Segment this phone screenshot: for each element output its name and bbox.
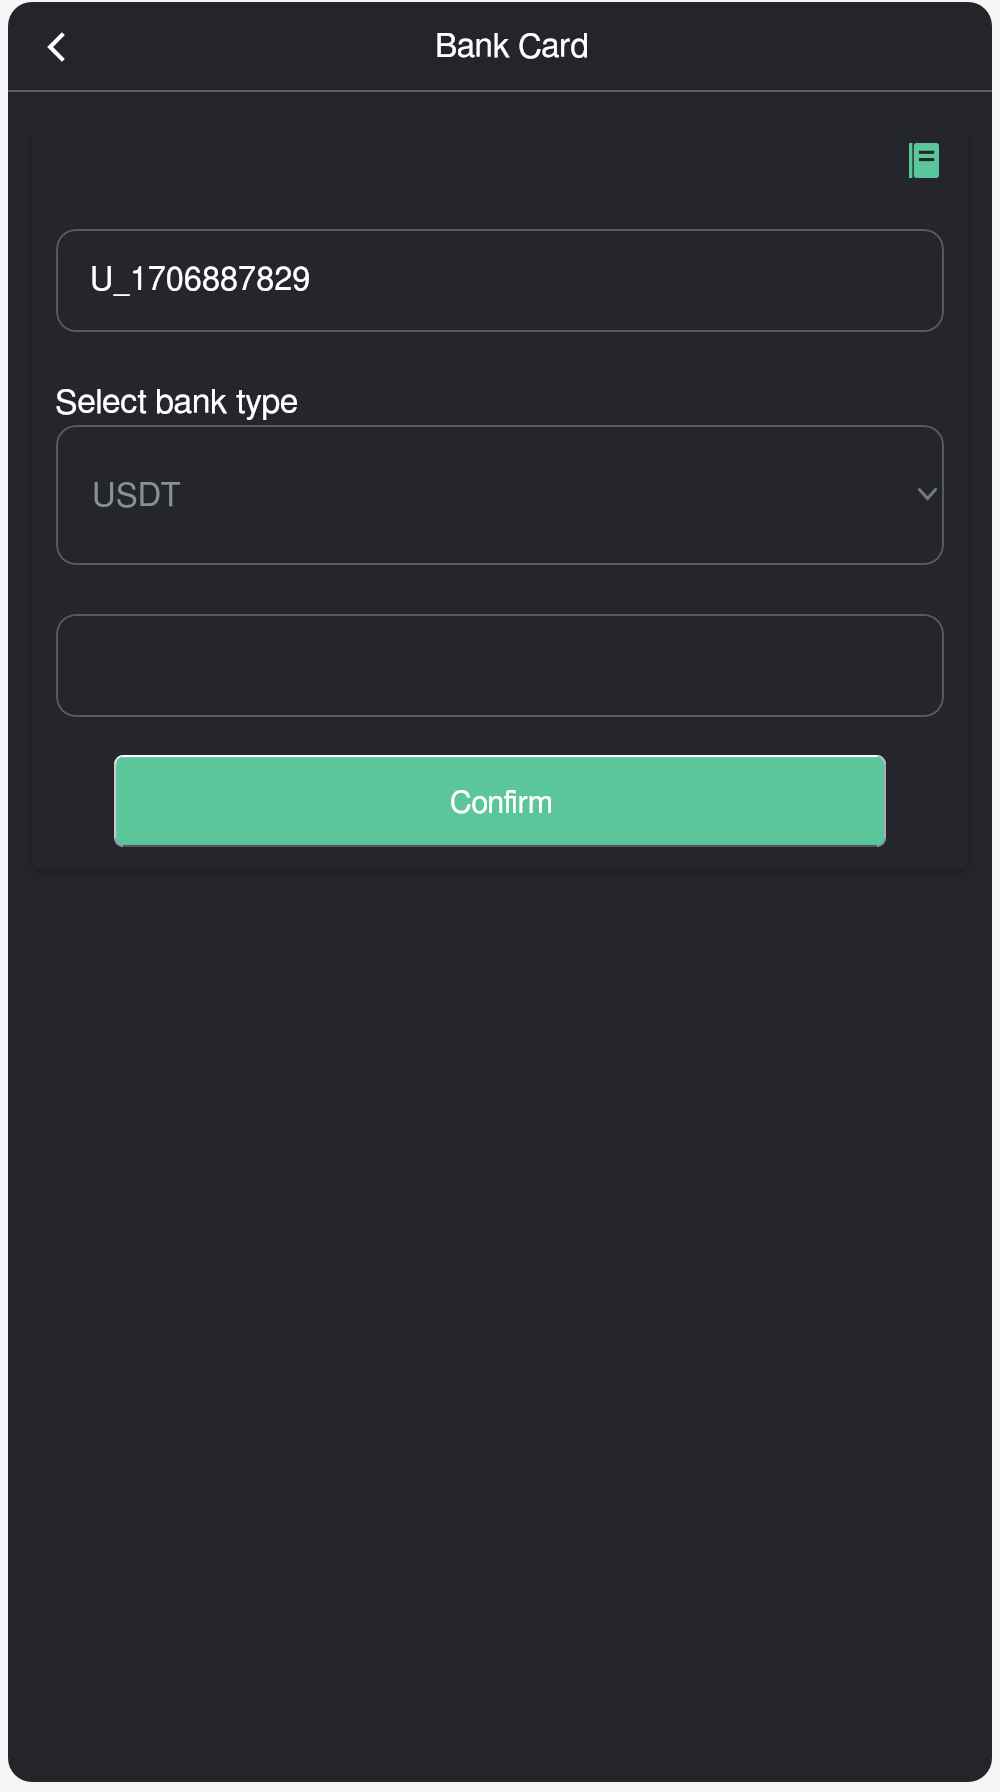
staticText: U_1706887829 [90, 264, 311, 297]
button[interactable]: USDT [56, 425, 944, 565]
staticText: Bank Card [435, 30, 589, 63]
button[interactable]: Bank card records [893, 130, 955, 190]
button[interactable]: Back [26, 4, 86, 90]
staticText: Confirm [450, 789, 553, 819]
staticText: Select bank type [55, 386, 299, 420]
button[interactable]: Confirm [114, 755, 886, 847]
button[interactable]: Bank account number [56, 614, 944, 717]
staticText: USDT [92, 480, 182, 513]
button[interactable]: U_1706887829 [56, 229, 944, 332]
